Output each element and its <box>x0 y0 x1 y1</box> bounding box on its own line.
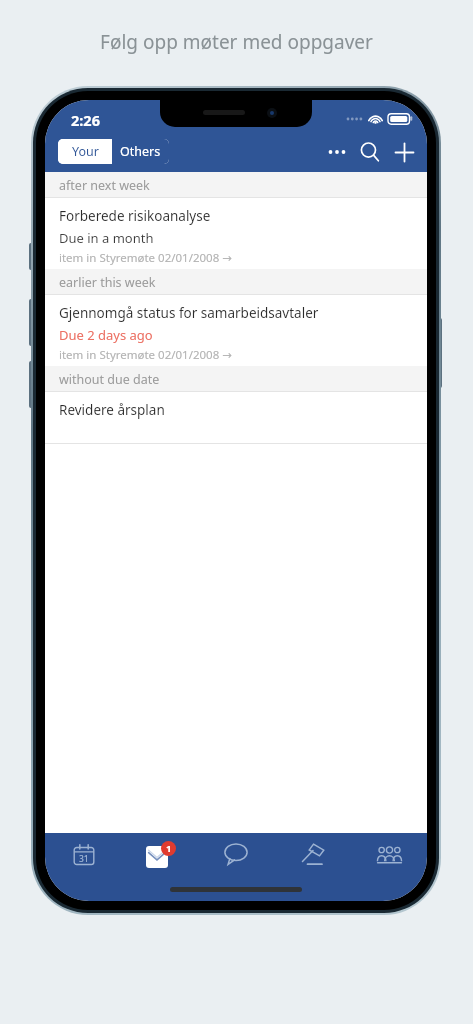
staticText: Your <box>72 143 99 160</box>
staticText: Forberede risikoanalyse <box>59 207 211 225</box>
button[interactable]: Forberede risikoanalyse <box>45 198 427 269</box>
staticText: item in Styremøte 02/01/2008 → <box>59 347 232 363</box>
button[interactable]: Others <box>112 139 169 164</box>
staticText: 1 <box>166 842 172 855</box>
button[interactable]: Your <box>58 139 112 164</box>
staticText: Gjennomgå status for samarbeidsavtaler <box>59 304 319 322</box>
staticText: earlier this week <box>59 274 156 291</box>
staticText: Others <box>120 143 161 160</box>
staticText: after next week <box>59 177 150 194</box>
button[interactable]: People <box>360 835 418 873</box>
staticText: 2:26 <box>71 110 100 130</box>
button[interactable]: Gjennomgå status for samarbeidsavtaler <box>45 295 427 366</box>
staticText: without due date <box>59 371 160 388</box>
staticText: Følg opp møter med oppgaver <box>0 29 473 55</box>
staticText: Due 2 days ago <box>59 326 153 344</box>
button[interactable]: More options <box>321 137 353 167</box>
button[interactable]: Add <box>387 137 421 167</box>
staticText: 31 <box>79 853 89 865</box>
button[interactable]: Decisions <box>283 835 341 873</box>
button[interactable]: Mail, 1 unread <box>131 835 189 873</box>
staticText: Due in a month <box>59 229 154 247</box>
button[interactable]: Chat <box>207 835 265 873</box>
staticText: item in Styremøte 02/01/2008 → <box>59 250 232 266</box>
button[interactable]: Revidere årsplan <box>45 392 427 444</box>
staticText: Revidere årsplan <box>59 401 165 419</box>
button[interactable]: Search <box>353 137 387 167</box>
button[interactable]: Calendar <box>54 835 112 873</box>
